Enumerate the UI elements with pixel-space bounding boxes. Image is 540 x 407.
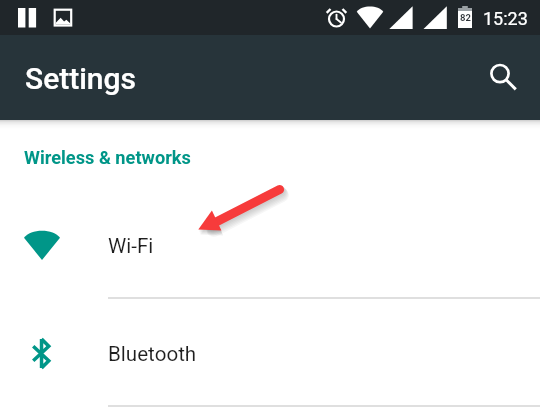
staticText: 82 bbox=[460, 12, 471, 23]
staticText: Settings bbox=[25, 61, 137, 96]
button[interactable]: Search bbox=[476, 49, 524, 97]
staticText: 15:23 bbox=[483, 8, 528, 29]
staticText: Bluetooth bbox=[108, 342, 197, 366]
staticText: Wireless & networks bbox=[24, 147, 191, 168]
button[interactable]: Bluetooth bbox=[0, 299, 540, 407]
staticText: Wi-Fi bbox=[108, 234, 154, 258]
button[interactable]: Wi-Fi bbox=[0, 191, 540, 299]
